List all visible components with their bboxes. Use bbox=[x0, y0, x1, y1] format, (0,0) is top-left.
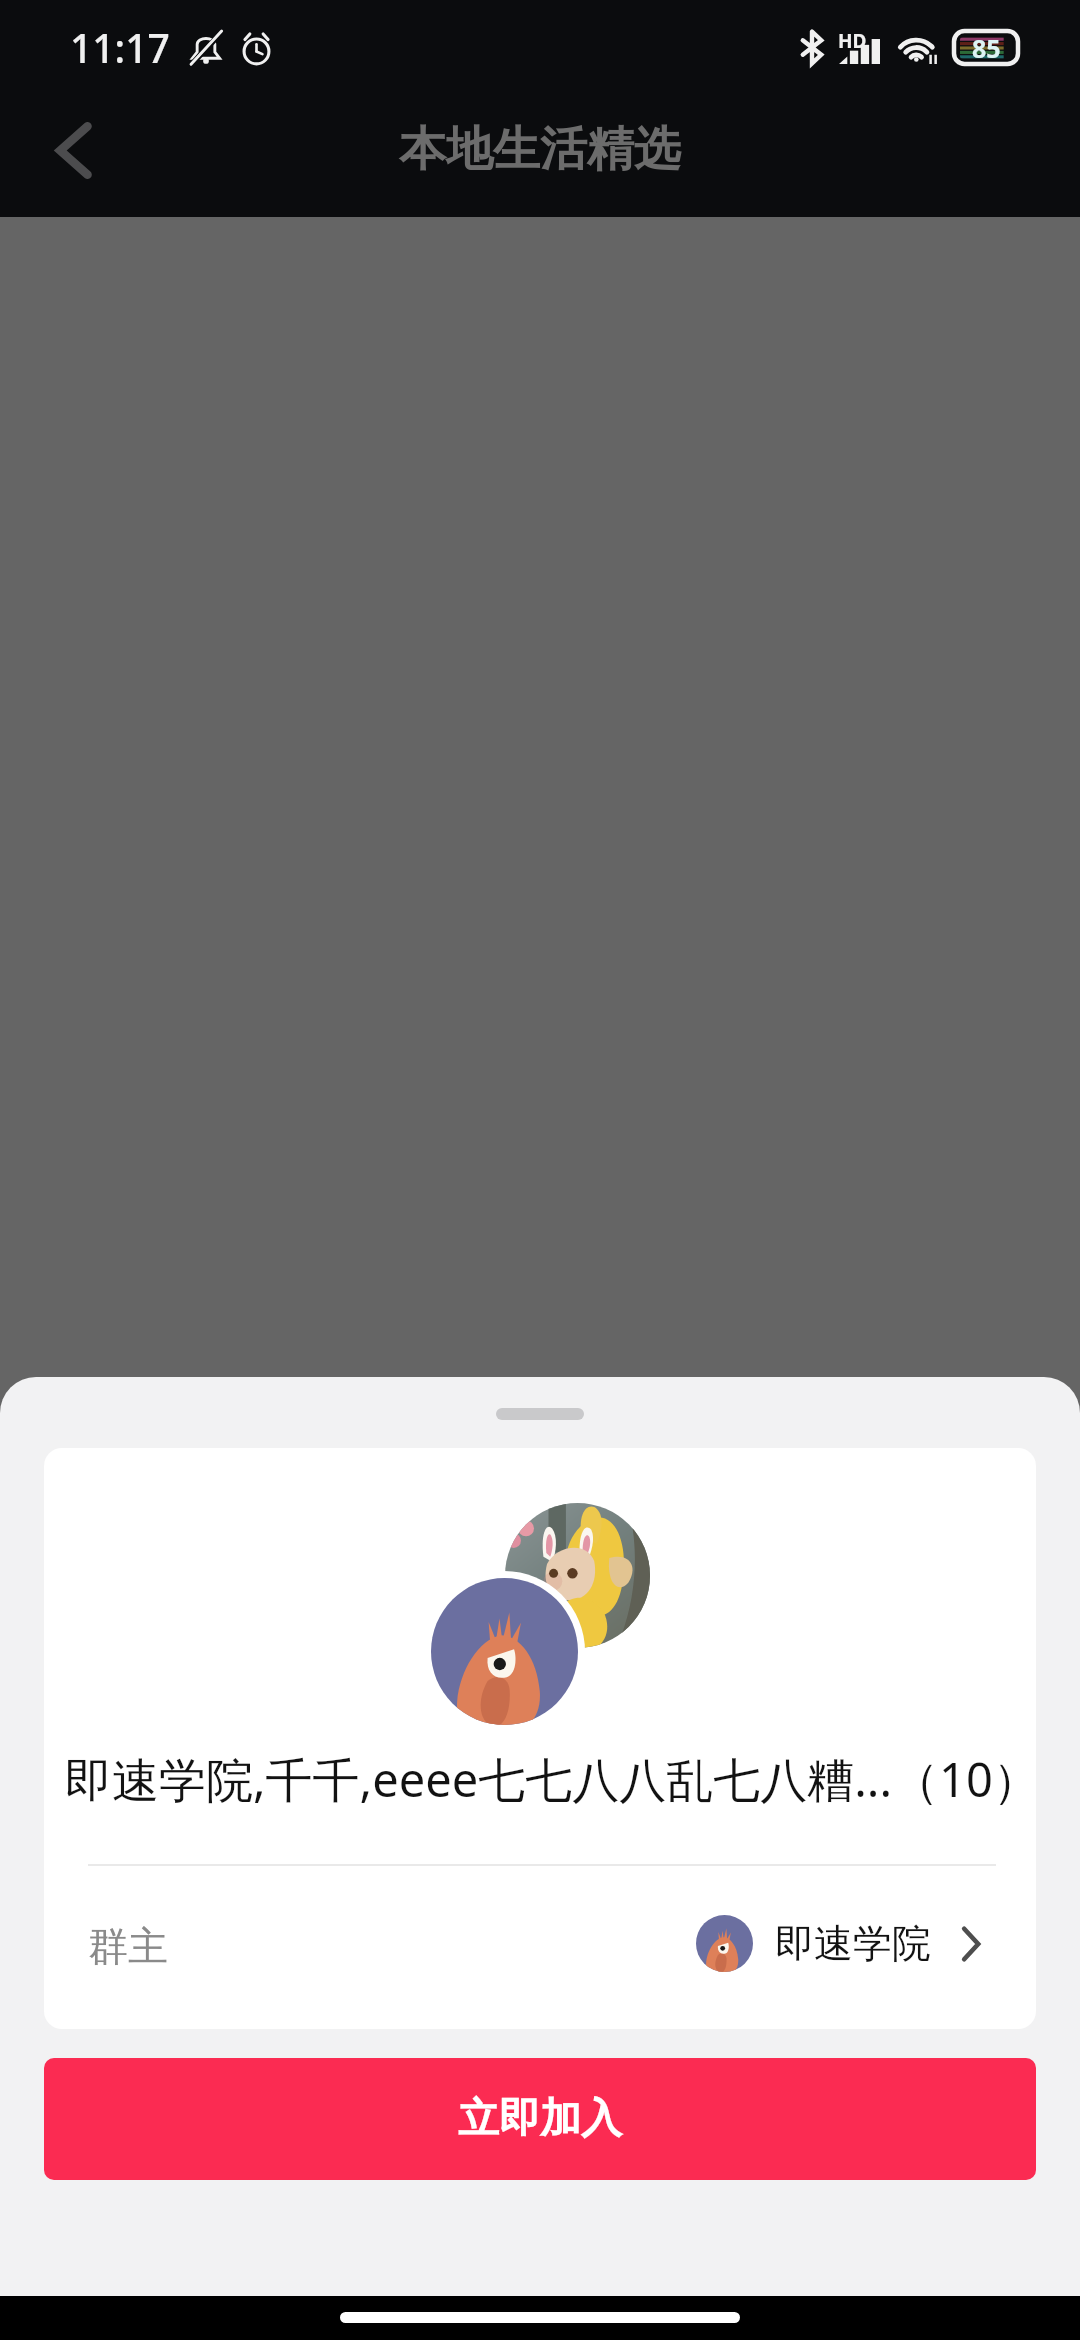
staticText: 群主 bbox=[88, 1921, 168, 1971]
button[interactable]: Dismiss bbox=[0, 217, 1080, 2340]
button[interactable]: 群主 bbox=[44, 1896, 1036, 1991]
staticText: 85 bbox=[972, 31, 1001, 64]
staticText: 立即加入 bbox=[458, 2093, 622, 2145]
staticText: 11:17 bbox=[70, 21, 170, 74]
staticText: 即速学院 bbox=[775, 1919, 931, 1968]
staticText: HD bbox=[838, 28, 867, 54]
button[interactable]: 立即加入 bbox=[44, 2058, 1036, 2180]
staticText: 即速学院,千千,eeee七七八八乱七八糟...（10） bbox=[65, 1747, 1036, 1811]
staticText: 本地生活精选 bbox=[399, 120, 681, 179]
button[interactable]: Back bbox=[28, 107, 118, 193]
